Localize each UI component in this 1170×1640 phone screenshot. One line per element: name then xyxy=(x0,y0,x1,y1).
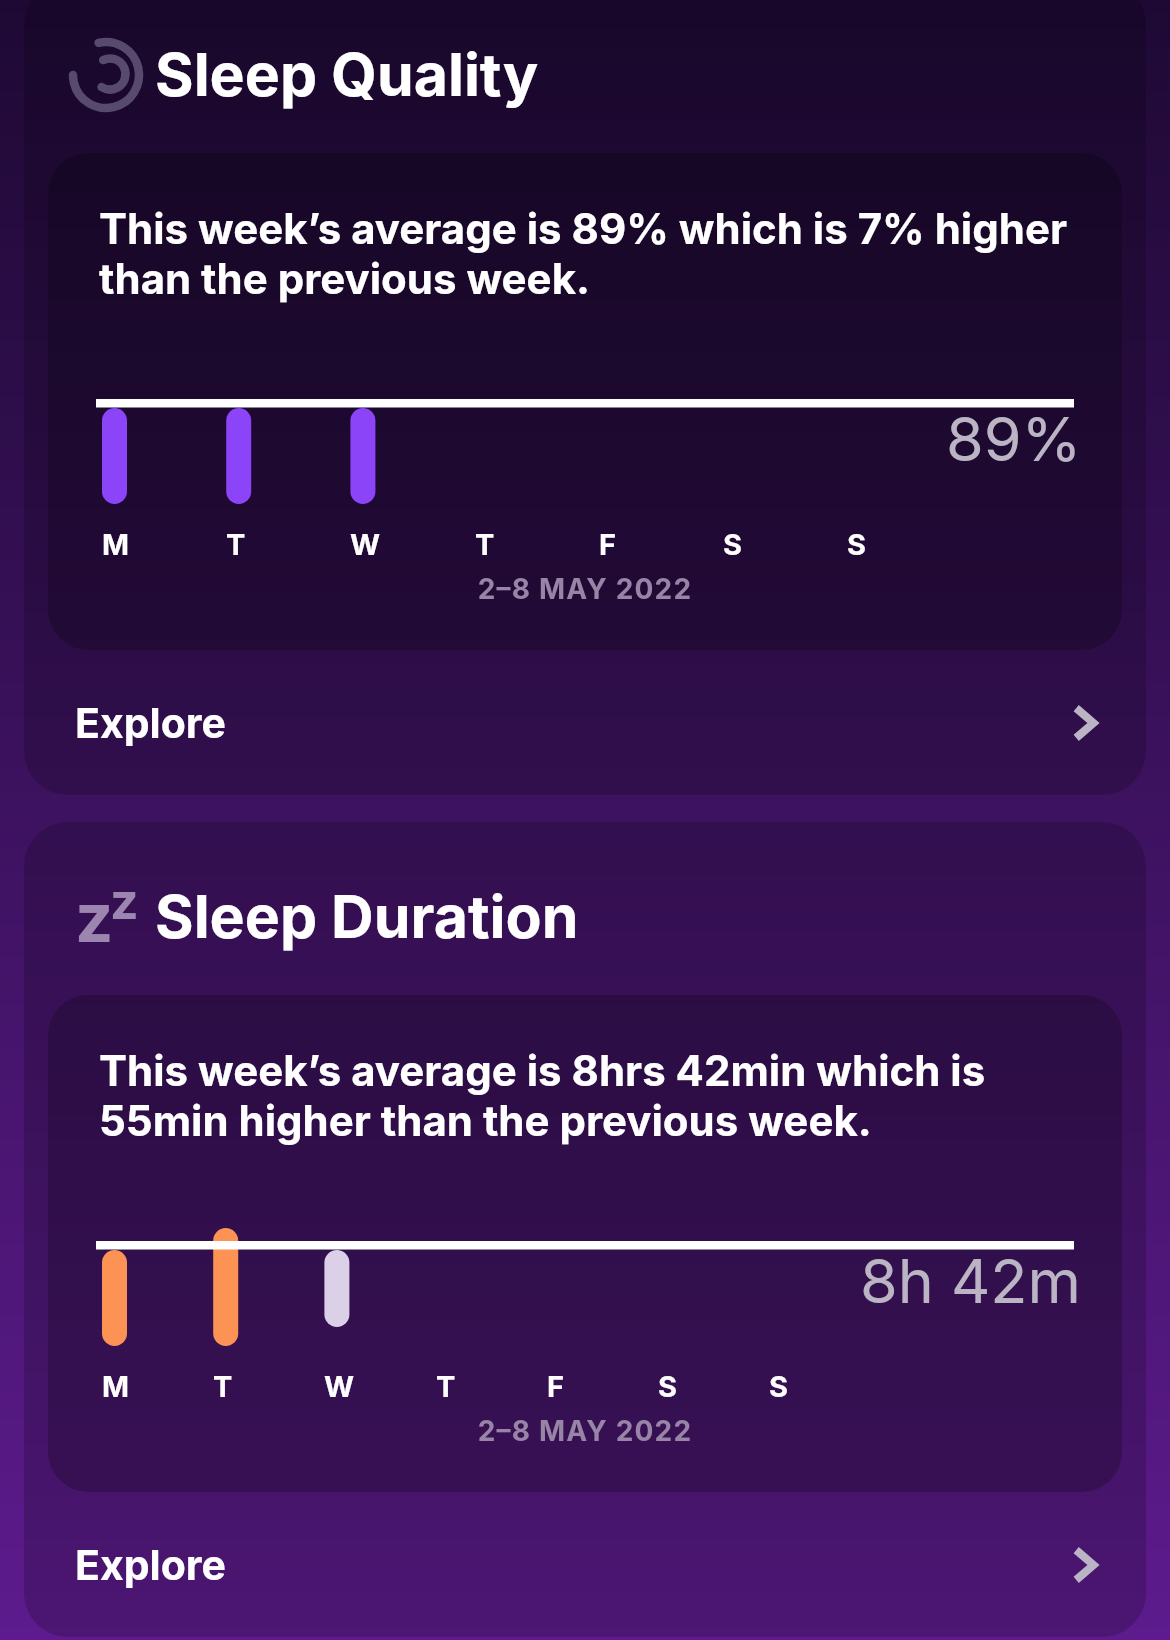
staticText: F xyxy=(547,1369,565,1404)
staticText: M xyxy=(102,1369,130,1404)
staticText: Sleep Quality xyxy=(155,39,539,110)
staticText: T xyxy=(436,1369,456,1404)
other: Sleep quality xyxy=(71,40,141,110)
staticText: 2–8 MAY 2022 xyxy=(48,572,1122,606)
staticText: Explore xyxy=(75,1540,226,1590)
staticText: Sleep Duration xyxy=(155,881,579,952)
staticText: M xyxy=(102,527,130,562)
staticText: W xyxy=(350,527,381,562)
other: Explore xyxy=(1057,699,1105,747)
button[interactable]: Explore xyxy=(24,1492,1146,1637)
staticText: S xyxy=(847,527,866,562)
staticText: T xyxy=(226,527,246,562)
staticText: T xyxy=(213,1369,233,1404)
staticText: 2–8 MAY 2022 xyxy=(48,1414,1122,1448)
staticText: z xyxy=(75,877,114,947)
button[interactable]: Explore xyxy=(24,650,1146,795)
staticText: S xyxy=(769,1369,788,1404)
staticText: T xyxy=(475,527,495,562)
staticText: S xyxy=(723,527,742,562)
other: Explore xyxy=(1057,1541,1105,1589)
staticText: This week’s average is 89% which is 7% h… xyxy=(99,203,1071,304)
staticText: This week’s average is 8hrs 42min which … xyxy=(99,1045,1071,1146)
other: Sleep duration xyxy=(71,882,141,952)
staticText: Explore xyxy=(75,698,226,748)
staticText: F xyxy=(599,527,617,562)
staticText: z xyxy=(110,871,139,931)
staticText: W xyxy=(324,1369,355,1404)
staticText: 89% xyxy=(946,402,1082,476)
staticText: 8h 42m xyxy=(860,1244,1082,1318)
staticText: S xyxy=(658,1369,677,1404)
